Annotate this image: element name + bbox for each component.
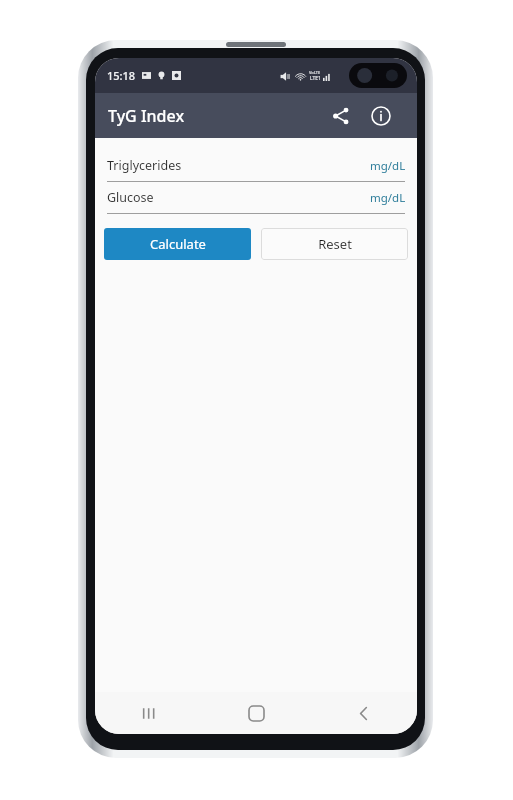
staticText: TyG Index — [108, 105, 185, 127]
button[interactable]: Triglycerides — [95, 150, 417, 181]
staticText: mg/dL — [370, 158, 406, 174]
button[interactable]: Home — [203, 692, 310, 734]
staticText: mg/dL — [370, 190, 406, 206]
button[interactable]: Info — [363, 98, 399, 134]
staticText: Reset — [318, 235, 352, 253]
button[interactable]: Calculate — [104, 228, 251, 260]
button[interactable]: Back — [310, 692, 417, 734]
staticText: LTE1 — [310, 75, 321, 82]
button[interactable]: Share — [323, 98, 359, 134]
button[interactable]: Reset — [261, 228, 408, 260]
staticText: 15:18 — [107, 68, 136, 83]
staticText: Calculate — [150, 235, 206, 253]
staticText: VoLTE — [309, 70, 321, 75]
staticText: Triglycerides — [107, 157, 182, 174]
button[interactable]: Glucose — [95, 182, 417, 213]
button[interactable]: Recent apps — [95, 692, 203, 734]
staticText: Glucose — [107, 189, 154, 206]
